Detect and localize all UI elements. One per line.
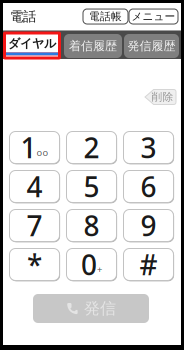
- staticText: 0: [81, 246, 97, 283]
- button[interactable]: メニュー: [129, 9, 178, 24]
- button[interactable]: 2: [66, 131, 116, 163]
- button[interactable]: 着信履歴: [64, 34, 122, 58]
- staticText: 削除: [151, 90, 173, 103]
- staticText: ダイヤル: [8, 36, 56, 51]
- button[interactable]: 発信: [33, 294, 149, 323]
- staticText: 電話帳: [89, 10, 122, 23]
- staticText: 9: [140, 207, 156, 244]
- button[interactable]: 発信履歴: [124, 34, 179, 58]
- button[interactable]: 9: [123, 209, 173, 241]
- button[interactable]: 8: [66, 209, 116, 241]
- staticText: 7: [26, 207, 42, 244]
- button[interactable]: 3: [123, 131, 173, 163]
- staticText: 2: [83, 129, 99, 166]
- staticText: 6: [140, 168, 156, 205]
- staticText: 3: [140, 129, 156, 166]
- button[interactable]: 7: [9, 209, 59, 241]
- staticText: *: [27, 246, 42, 283]
- staticText: oo: [36, 146, 48, 158]
- staticText: +: [97, 263, 102, 275]
- button[interactable]: 5: [66, 170, 116, 202]
- staticText: 発信: [84, 299, 116, 318]
- staticText: 着信履歴: [69, 39, 117, 53]
- button[interactable]: *: [9, 248, 59, 280]
- button[interactable]: 電話帳: [83, 9, 128, 24]
- button[interactable]: #: [123, 248, 173, 280]
- staticText: メニュー: [131, 10, 175, 23]
- staticText: 発信履歴: [127, 39, 175, 53]
- staticText: 5: [83, 168, 99, 205]
- button[interactable]: ダイヤル: [3, 31, 61, 59]
- staticText: 1: [20, 129, 36, 166]
- button[interactable]: 1: [9, 131, 59, 163]
- staticText: 8: [83, 207, 99, 244]
- staticText: 電話: [10, 8, 36, 25]
- button[interactable]: 0: [66, 248, 116, 280]
- staticText: #: [139, 246, 157, 283]
- button[interactable]: 4: [9, 170, 59, 202]
- button[interactable]: 6: [123, 170, 173, 202]
- button[interactable]: 削除: [145, 89, 176, 104]
- staticText: 4: [26, 168, 42, 205]
